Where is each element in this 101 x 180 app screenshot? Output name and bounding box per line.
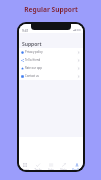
staticText: Tasks	[34, 168, 42, 170]
button[interactable]: Tell a friend	[19, 56, 83, 64]
staticText: Tell a friend	[25, 58, 77, 62]
button[interactable]: Contact us	[19, 72, 83, 80]
staticText: Privacy policy	[25, 50, 77, 54]
staticText: Home	[21, 168, 29, 170]
button[interactable]: Stats	[57, 160, 70, 170]
button[interactable]: Lists	[44, 160, 57, 170]
button[interactable]: Profile	[70, 160, 83, 170]
button[interactable]: Privacy policy	[19, 48, 83, 56]
staticText: Lists	[48, 168, 54, 170]
staticText: 9:41	[22, 29, 29, 33]
staticText: Stats	[60, 168, 67, 170]
button[interactable]: Rate our app	[19, 64, 83, 72]
staticText: Contact us	[25, 74, 77, 78]
staticText: Rate our app	[25, 66, 77, 70]
staticText: Profile	[72, 168, 81, 170]
staticText: Regular Support	[24, 5, 78, 14]
button[interactable]: Home	[19, 160, 31, 170]
staticText: Support	[22, 41, 42, 48]
button[interactable]: Tasks	[31, 160, 44, 170]
